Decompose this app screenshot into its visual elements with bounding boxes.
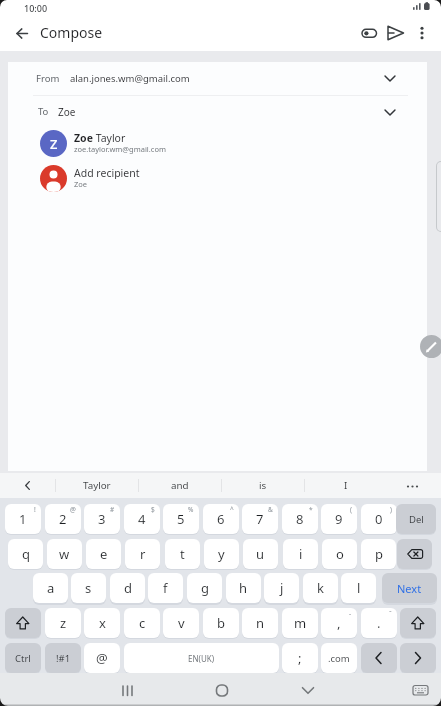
button[interactable] bbox=[8, 473, 48, 498]
button[interactable]: i bbox=[283, 539, 318, 569]
staticText: - bbox=[349, 609, 352, 618]
staticText: 1 bbox=[19, 510, 27, 528]
button[interactable] bbox=[361, 643, 397, 673]
button[interactable] bbox=[390, 473, 435, 498]
staticText: Z bbox=[50, 135, 58, 153]
button[interactable]: .com bbox=[321, 643, 357, 673]
button[interactable]: 0 bbox=[361, 504, 397, 534]
button[interactable]: 2 bbox=[45, 504, 81, 534]
button[interactable]: v bbox=[163, 608, 199, 638]
button[interactable]: EN(UK) bbox=[124, 643, 279, 673]
button[interactable]: n bbox=[242, 608, 278, 638]
button[interactable] bbox=[204, 676, 240, 704]
button[interactable]: d bbox=[110, 573, 145, 603]
button[interactable]: Next bbox=[382, 573, 437, 603]
button[interactable]: , bbox=[321, 608, 357, 638]
button[interactable]: 9 bbox=[321, 504, 357, 534]
button[interactable] bbox=[400, 608, 436, 638]
button[interactable]: 4 bbox=[124, 504, 160, 534]
staticText: x bbox=[99, 614, 106, 632]
button[interactable]: !#1 bbox=[45, 643, 81, 673]
staticText: EN(UK) bbox=[188, 653, 215, 664]
staticText: w bbox=[59, 545, 70, 563]
button[interactable]: g bbox=[187, 573, 222, 603]
staticText: ˆ bbox=[389, 609, 392, 618]
button[interactable]: . bbox=[361, 608, 397, 638]
staticText: u bbox=[256, 545, 265, 563]
button[interactable]: u bbox=[243, 539, 278, 569]
staticText: % bbox=[188, 505, 194, 514]
button[interactable]: b bbox=[203, 608, 239, 638]
button[interactable]: ; bbox=[282, 643, 318, 673]
staticText: 0 bbox=[375, 510, 383, 528]
button[interactable]: 3 bbox=[84, 504, 120, 534]
staticText: @ bbox=[96, 649, 108, 667]
button[interactable]: t bbox=[165, 539, 200, 569]
button[interactable]: h bbox=[226, 573, 261, 603]
staticText: m bbox=[294, 614, 307, 632]
staticText: , bbox=[337, 614, 341, 632]
button[interactable]: m bbox=[282, 608, 318, 638]
button[interactable]: is bbox=[221, 473, 304, 498]
staticText: e bbox=[100, 545, 108, 563]
button[interactable] bbox=[8, 62, 427, 95]
button[interactable]: 5 bbox=[163, 504, 199, 534]
button[interactable]: o bbox=[322, 539, 357, 569]
button[interactable]: r bbox=[125, 539, 160, 569]
button[interactable] bbox=[400, 643, 436, 673]
staticText: Del bbox=[409, 513, 424, 526]
staticText: ! bbox=[34, 505, 36, 514]
button[interactable]: w bbox=[47, 539, 82, 569]
button[interactable] bbox=[8, 164, 427, 198]
button[interactable]: a bbox=[33, 573, 68, 603]
staticText: v bbox=[178, 614, 185, 632]
button[interactable] bbox=[413, 20, 433, 46]
button[interactable] bbox=[290, 676, 326, 704]
button[interactable]: y bbox=[204, 539, 239, 569]
button[interactable] bbox=[10, 21, 36, 47]
staticText: n bbox=[256, 614, 265, 632]
button[interactable]: z bbox=[45, 608, 81, 638]
button[interactable] bbox=[420, 335, 441, 358]
button[interactable]: c bbox=[124, 608, 160, 638]
staticText: y bbox=[218, 545, 225, 563]
staticText: Zoe Taylor bbox=[74, 131, 126, 145]
button[interactable]: @ bbox=[84, 643, 120, 673]
button[interactable] bbox=[406, 678, 434, 702]
staticText: 4 bbox=[138, 510, 146, 528]
button[interactable]: f bbox=[148, 573, 183, 603]
button[interactable]: p bbox=[361, 539, 396, 569]
button[interactable] bbox=[8, 128, 427, 164]
button[interactable]: l bbox=[341, 573, 376, 603]
button[interactable]: Ctrl bbox=[5, 643, 41, 673]
button[interactable]: 8 bbox=[282, 504, 318, 534]
staticText: 2 bbox=[59, 510, 67, 528]
button[interactable] bbox=[397, 539, 432, 569]
button[interactable]: k bbox=[303, 573, 338, 603]
button[interactable]: x bbox=[84, 608, 120, 638]
button[interactable]: e bbox=[86, 539, 121, 569]
button[interactable]: Del bbox=[396, 504, 436, 534]
button[interactable] bbox=[384, 20, 408, 46]
staticText: $ bbox=[151, 505, 155, 514]
staticText: 10:00 bbox=[24, 2, 48, 14]
button[interactable] bbox=[5, 608, 41, 638]
button[interactable] bbox=[358, 20, 382, 46]
button[interactable]: 6 bbox=[203, 504, 239, 534]
button[interactable]: q bbox=[8, 539, 43, 569]
button[interactable]: j bbox=[264, 573, 299, 603]
staticText: p bbox=[375, 545, 383, 563]
button[interactable] bbox=[8, 95, 427, 128]
button[interactable] bbox=[109, 676, 145, 704]
button[interactable]: s bbox=[71, 573, 106, 603]
staticText: Ctrl bbox=[15, 652, 31, 665]
staticText: h bbox=[239, 579, 248, 597]
staticText: @ bbox=[70, 505, 76, 514]
button[interactable]: I bbox=[304, 473, 387, 498]
button[interactable]: Taylor bbox=[55, 473, 138, 498]
button[interactable]: and bbox=[138, 473, 221, 498]
button[interactable]: 7 bbox=[242, 504, 278, 534]
staticText: * bbox=[309, 505, 313, 514]
button[interactable]: 1 bbox=[5, 504, 41, 534]
staticText: ; bbox=[298, 649, 302, 667]
